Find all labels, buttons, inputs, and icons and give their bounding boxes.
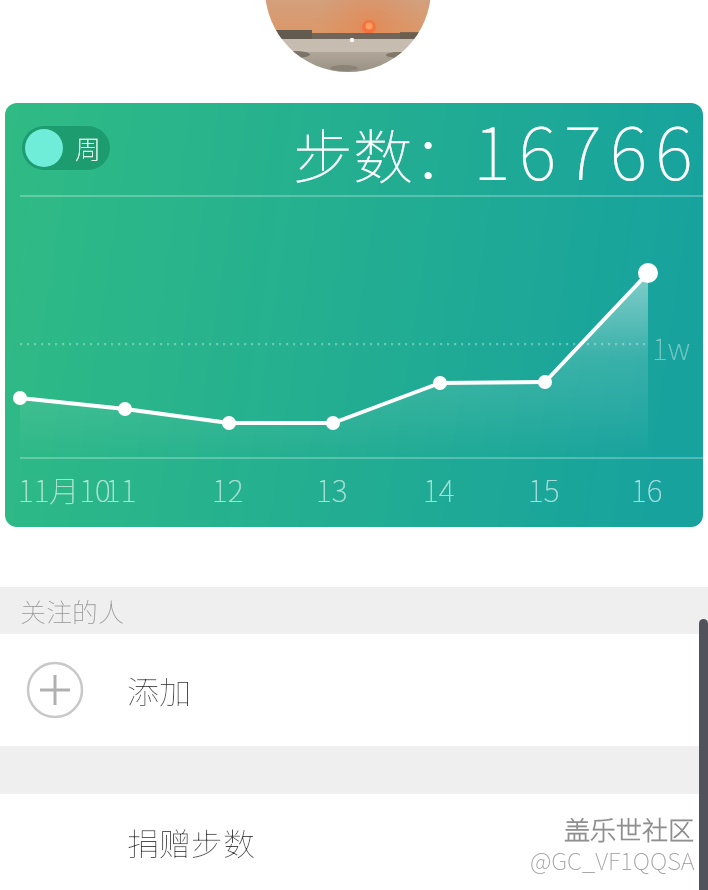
staticText: 1w	[652, 325, 690, 368]
staticText: 11	[105, 467, 137, 510]
staticText: 16	[631, 467, 663, 510]
staticText: 捐赠步数	[127, 819, 256, 865]
staticText: 添加	[127, 667, 192, 713]
button[interactable]: 捐赠步数	[0, 794, 708, 890]
staticText: 15	[528, 467, 560, 510]
staticText: 关注的人	[20, 592, 125, 630]
staticText: 周	[75, 129, 102, 167]
staticText: 16766	[473, 103, 701, 196]
staticText: 盖乐世社区	[564, 810, 695, 848]
button[interactable]: 步数：	[5, 103, 701, 196]
staticText: 13	[316, 467, 348, 510]
staticText: 11月10	[18, 467, 111, 510]
staticText: 步数：	[293, 109, 473, 196]
staticText: @GC_VF1QQSA	[530, 842, 695, 877]
button[interactable]: 添加	[0, 634, 708, 746]
staticText: 14	[423, 467, 455, 510]
staticText: 12	[212, 467, 244, 510]
button[interactable]: 周	[22, 126, 110, 170]
